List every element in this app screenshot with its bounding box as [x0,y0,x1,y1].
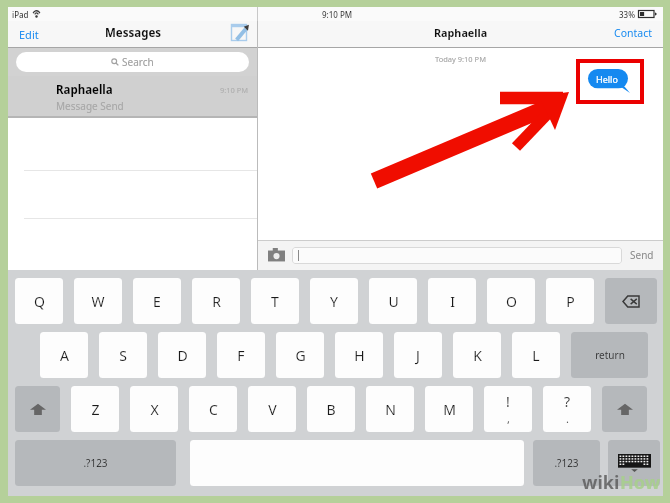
button[interactable]: .?123 [15,440,176,486]
button[interactable]: N [366,386,414,432]
staticText: . [566,411,569,426]
button[interactable]: C [189,386,237,432]
button[interactable]: Z [71,386,119,432]
staticText: C [209,400,218,419]
staticText: A [60,346,69,365]
staticText: Z [91,400,100,419]
button[interactable]: X [130,386,178,432]
button[interactable]: return [571,332,648,378]
staticText: How [620,470,661,495]
button[interactable]: J [394,332,442,378]
staticText: S [119,346,127,365]
button[interactable]: O [487,278,535,324]
staticText: U [388,292,399,311]
staticText: Today 9:10 PM [435,54,486,64]
staticText: G [295,346,306,365]
staticText: wiki [582,470,620,495]
button[interactable]: Send [627,245,657,265]
staticText: return [595,348,625,362]
staticText: Search [122,55,154,69]
staticText: T [271,292,279,311]
button[interactable]: S [99,332,147,378]
button[interactable]: W [74,278,122,324]
staticText: F [237,346,245,365]
button[interactable]: K [453,332,501,378]
button[interactable]: Backspace [605,278,657,324]
button[interactable]: Hide keyboard [608,440,660,486]
button[interactable]: H [335,332,383,378]
button[interactable]: Q [15,278,63,324]
staticText: Message Send [56,99,124,113]
staticText: I [450,292,455,311]
staticText: iPad [12,9,29,20]
button[interactable]: B [307,386,355,432]
staticText: Raphaella [56,82,113,98]
staticText: R [212,292,221,311]
staticText: D [177,346,188,365]
staticText: Contact [614,26,652,40]
staticText: L [532,346,540,365]
button[interactable]: Y [310,278,358,324]
staticText: ? [564,392,571,411]
staticText: Send [630,248,654,262]
staticText: Q [34,292,45,311]
button[interactable]: U [369,278,417,324]
button[interactable]: I [428,278,476,324]
staticText: P [566,292,575,311]
staticText: W [91,292,105,311]
staticText: Edit [19,27,39,42]
staticText: .?123 [83,456,108,470]
button[interactable]: Search [16,52,249,72]
button[interactable]: Compose new message [229,22,249,42]
button[interactable]: ? [543,386,591,432]
button[interactable] [292,247,622,264]
staticText: B [326,400,336,419]
button[interactable]: .?123 [533,440,600,486]
button[interactable]: Edit [17,24,41,45]
button[interactable]: ! [484,386,532,432]
button[interactable]: G [276,332,324,378]
staticText: V [268,400,277,419]
button[interactable]: Camera [266,245,286,265]
staticText: Raphaella [434,25,488,40]
staticText: 9:10 PM [220,85,249,95]
button[interactable]: Contact [607,23,663,43]
button[interactable]: M [425,386,473,432]
staticText: Y [330,292,338,311]
staticText: , [507,411,510,426]
button[interactable]: L [512,332,560,378]
staticText: X [150,400,159,419]
staticText: O [506,292,517,311]
button[interactable]: Shift [15,386,60,432]
button[interactable]: R [192,278,240,324]
staticText: H [354,346,365,365]
button[interactable]: P [546,278,594,324]
staticText: M [443,400,456,419]
staticText: K [473,346,482,365]
button[interactable]: Hello [588,69,630,93]
staticText: Messages [105,25,162,41]
staticText: ! [506,392,510,411]
button[interactable]: Shift [602,386,647,432]
staticText: J [416,346,420,365]
button[interactable]: D [158,332,206,378]
button[interactable]: T [251,278,299,324]
button[interactable]: Raphaella [8,76,257,116]
button[interactable]: F [217,332,265,378]
button[interactable]: E [133,278,181,324]
staticText: 33% [619,9,635,20]
staticText: E [153,292,161,311]
button[interactable]: V [248,386,296,432]
staticText: Hello [596,73,618,85]
staticText: N [385,400,396,419]
button[interactable]: A [40,332,88,378]
staticText: 9:10 PM [322,9,353,20]
staticText: .?123 [554,456,579,470]
